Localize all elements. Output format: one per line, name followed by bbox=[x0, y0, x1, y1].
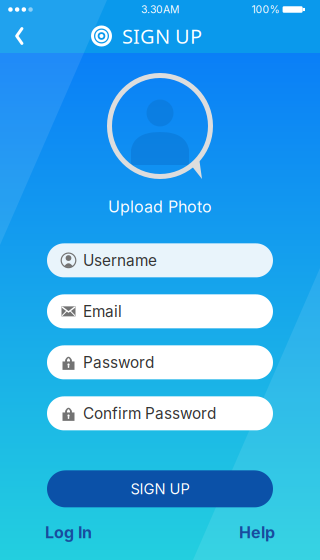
staticText: Password bbox=[83, 353, 154, 372]
staticText: SIGN UP bbox=[122, 23, 202, 49]
button[interactable]: Help bbox=[239, 523, 275, 542]
staticText: Email bbox=[83, 302, 122, 321]
staticText: Log In bbox=[45, 523, 92, 542]
staticText: Username bbox=[83, 251, 157, 270]
staticText: Upload Photo bbox=[108, 197, 212, 216]
button[interactable]: Username bbox=[47, 243, 273, 277]
button[interactable]: Confirm Password bbox=[47, 396, 273, 430]
button[interactable]: Back bbox=[0, 19, 36, 53]
staticText: 3.30AM bbox=[141, 3, 179, 16]
button[interactable]: SIGN UP bbox=[47, 470, 273, 507]
button[interactable]: Log In bbox=[45, 523, 92, 542]
staticText: SIGN UP bbox=[130, 480, 189, 498]
staticText: 100% bbox=[252, 3, 280, 16]
button[interactable]: Email bbox=[47, 294, 273, 328]
staticText: Help bbox=[239, 523, 275, 542]
button[interactable]: Password bbox=[47, 345, 273, 379]
staticText: Confirm Password bbox=[83, 404, 216, 423]
